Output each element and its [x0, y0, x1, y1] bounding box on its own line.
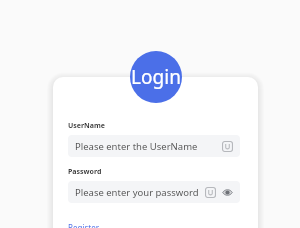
button[interactable]: Register [68, 221, 100, 228]
staticText: Register [68, 222, 100, 228]
button[interactable]: Please enter your password [68, 181, 240, 203]
button[interactable]: Show password [222, 187, 233, 198]
button[interactable]: Clear text [222, 141, 233, 152]
staticText: Login [131, 64, 181, 90]
button[interactable]: Please enter the UserName [68, 135, 240, 157]
staticText: Please enter the UserName [75, 140, 222, 153]
button[interactable]: Login [130, 51, 182, 103]
staticText: UserName [68, 121, 106, 131]
staticText: Password [68, 167, 102, 177]
staticText: Please enter your password [75, 186, 205, 199]
button[interactable]: Clear text [205, 187, 216, 198]
